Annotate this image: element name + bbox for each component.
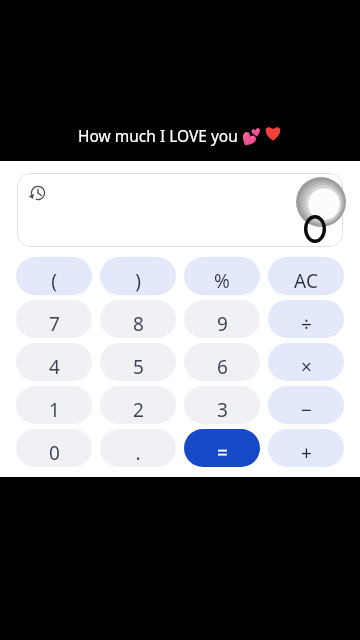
button[interactable]: 2	[100, 386, 176, 424]
button[interactable]: 6	[184, 343, 260, 381]
staticText: ×	[301, 354, 312, 380]
other: Display value 0	[304, 215, 326, 243]
staticText: 1	[49, 397, 60, 423]
staticText: 9	[217, 311, 228, 337]
button[interactable]: (	[16, 257, 92, 295]
staticText: %	[214, 268, 230, 294]
button[interactable]: )	[100, 257, 176, 295]
button[interactable]: 3	[184, 386, 260, 424]
button[interactable]: 4	[16, 343, 92, 381]
staticText: )	[135, 268, 141, 294]
staticText: =	[217, 440, 228, 466]
button[interactable]: .	[100, 429, 176, 467]
button[interactable]: 7	[16, 300, 92, 338]
button[interactable]: =	[184, 429, 260, 467]
button[interactable]: ÷	[268, 300, 344, 338]
staticText: (	[51, 268, 57, 294]
button[interactable]: ×	[268, 343, 344, 381]
staticText: How much I LOVE you 💕	[78, 125, 262, 146]
button[interactable]: %	[184, 257, 260, 295]
staticText: 4	[49, 354, 60, 380]
staticText: 6	[217, 354, 228, 380]
button[interactable]: 9	[184, 300, 260, 338]
button[interactable]: −	[268, 386, 344, 424]
button[interactable]: 5	[100, 343, 176, 381]
button[interactable]: 0	[16, 429, 92, 467]
button[interactable]: 1	[16, 386, 92, 424]
staticText: 3	[217, 397, 228, 423]
staticText: −	[301, 397, 312, 423]
staticText: 2	[133, 397, 144, 423]
staticText: 5	[133, 354, 144, 380]
staticText: +	[301, 440, 312, 466]
button[interactable]: AC	[268, 257, 344, 295]
button[interactable]: 8	[100, 300, 176, 338]
button[interactable]: History	[30, 185, 46, 201]
staticText: 7	[49, 311, 60, 337]
staticText: .	[135, 440, 141, 466]
staticText: 0	[49, 440, 60, 466]
staticText: AC	[294, 268, 318, 294]
staticText: 8	[133, 311, 144, 337]
button[interactable]: +	[268, 429, 344, 467]
staticText: ÷	[301, 311, 312, 337]
